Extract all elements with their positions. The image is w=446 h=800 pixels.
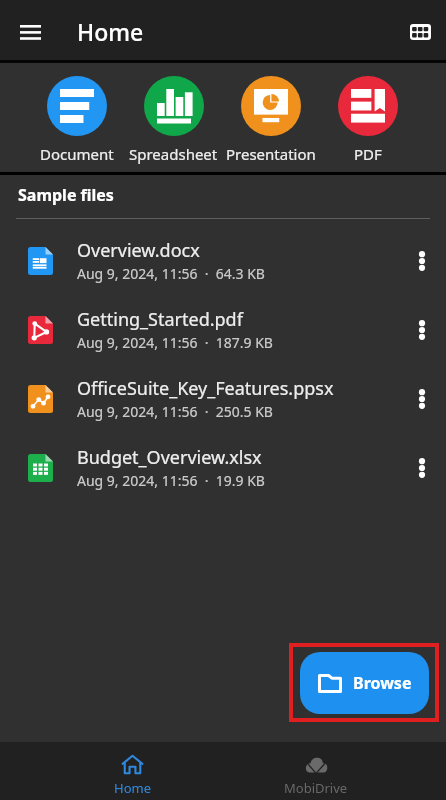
staticText: Spreadsheet [129, 144, 218, 164]
staticText: Browse [353, 672, 412, 694]
staticText: Sample files [18, 184, 114, 206]
button[interactable]: Budget_Overview.xlsx [0, 433, 446, 502]
button[interactable]: Document [28, 63, 125, 164]
button[interactable]: Home [40, 746, 224, 797]
button[interactable]: Open navigation menu [10, 12, 50, 52]
button[interactable]: More options [401, 447, 443, 489]
staticText: Overview.docx [77, 238, 200, 263]
button[interactable]: Switch to grid view [398, 10, 442, 54]
staticText: OfficeSuite_Key_Features.ppsx [77, 376, 334, 401]
button[interactable]: OfficeSuite_Key_Features.ppsx [0, 364, 446, 433]
button[interactable]: Spreadsheet [125, 63, 222, 164]
button[interactable]: More options [401, 240, 443, 282]
staticText: Aug 9, 2024, 11:56 · 64.3 KB [77, 264, 265, 283]
staticText: Getting_Started.pdf [77, 307, 243, 332]
staticText: PDF [354, 144, 382, 164]
staticText: Home [77, 16, 144, 47]
button[interactable]: More options [401, 309, 443, 351]
staticText: Home [114, 779, 151, 797]
staticText: Aug 9, 2024, 11:56 · 187.9 KB [77, 333, 273, 352]
staticText: Aug 9, 2024, 11:56 · 19.9 KB [77, 471, 265, 490]
staticText: Budget_Overview.xlsx [77, 445, 262, 470]
button[interactable]: Browse [300, 652, 429, 714]
button[interactable]: PDF [319, 63, 416, 164]
button[interactable]: MobiDrive [224, 746, 408, 797]
button[interactable]: More options [401, 378, 443, 420]
staticText: Presentation [226, 144, 316, 164]
staticText: Aug 9, 2024, 11:56 · 250.5 KB [77, 402, 273, 421]
staticText: Document [40, 144, 114, 164]
button[interactable]: Getting_Started.pdf [0, 295, 446, 364]
button[interactable]: Presentation [222, 63, 319, 164]
button[interactable]: Overview.docx [0, 226, 446, 295]
staticText: MobiDrive [284, 779, 348, 797]
